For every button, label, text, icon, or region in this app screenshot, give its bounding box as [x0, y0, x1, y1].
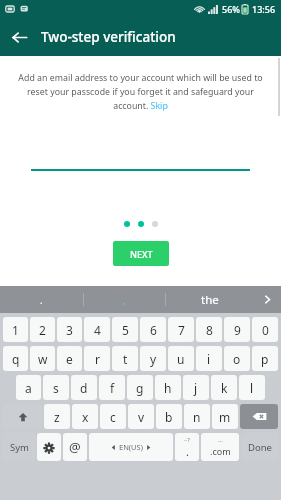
staticText: e	[66, 351, 73, 367]
staticText: 4	[94, 322, 101, 338]
button[interactable]: Navigate up	[0, 18, 38, 56]
button[interactable]: a	[16, 375, 41, 400]
button[interactable]: 5	[112, 317, 138, 342]
button[interactable]: r	[84, 346, 110, 371]
button[interactable]: z	[44, 404, 70, 429]
button[interactable]: u	[168, 346, 194, 371]
staticText: r	[95, 351, 100, 367]
staticText: p	[261, 351, 269, 367]
staticText: f	[110, 380, 115, 396]
button[interactable]: q	[3, 346, 28, 371]
button[interactable]: the	[166, 286, 254, 313]
staticText: 7	[178, 322, 185, 338]
button[interactable]: m	[212, 404, 238, 429]
staticText: .com	[210, 445, 231, 457]
staticText: Sym	[10, 441, 29, 454]
button[interactable]: Done	[241, 433, 278, 461]
button[interactable]: 3	[57, 317, 82, 342]
staticText: 8	[206, 322, 213, 338]
button[interactable]: f	[99, 375, 125, 400]
staticText: l	[250, 380, 254, 396]
staticText: 56%	[222, 3, 240, 15]
staticText: m	[219, 409, 231, 425]
button[interactable]: j	[183, 375, 209, 400]
button[interactable]: 1	[3, 317, 28, 342]
button[interactable]: Backspace	[240, 404, 278, 429]
button[interactable]: y	[140, 346, 166, 371]
staticText: 5	[122, 322, 129, 338]
staticText: k	[221, 380, 228, 396]
staticText: i	[207, 351, 211, 367]
button[interactable]: k	[211, 375, 237, 400]
button[interactable]: h	[155, 375, 181, 400]
button[interactable]: x	[72, 404, 98, 429]
staticText: 13:56	[252, 3, 276, 15]
staticText: .	[186, 444, 189, 459]
button[interactable]: 7	[168, 317, 194, 342]
staticText: j	[194, 380, 198, 396]
staticText: 9	[234, 322, 241, 338]
staticText: Done	[248, 441, 272, 454]
staticText: Two-step verification	[41, 28, 176, 46]
staticText: u	[177, 351, 185, 367]
button[interactable]: v	[128, 404, 154, 429]
staticText: x	[82, 409, 89, 425]
button[interactable]: 2	[30, 317, 55, 342]
staticText: v	[138, 409, 145, 425]
button[interactable]: 4	[84, 317, 110, 342]
button[interactable]: l	[239, 375, 265, 400]
button[interactable]: p	[252, 346, 278, 371]
staticText: ,	[123, 294, 126, 306]
button[interactable]: Space	[89, 433, 173, 461]
button[interactable]: 9	[224, 317, 250, 342]
staticText: t	[123, 351, 128, 367]
button[interactable]: b	[156, 404, 182, 429]
button[interactable]: t	[112, 346, 138, 371]
button[interactable]: Shift	[3, 404, 42, 429]
button[interactable]: Keyboard settings	[37, 433, 61, 461]
staticText: 2	[39, 322, 46, 338]
staticText: ···	[218, 437, 223, 445]
staticText: n	[193, 409, 201, 425]
button[interactable]: More suggestions	[254, 286, 281, 313]
button[interactable]: 6	[140, 317, 166, 342]
staticText: the	[201, 292, 219, 308]
button[interactable]: ··?	[175, 433, 199, 461]
staticText: a	[25, 380, 32, 396]
button[interactable]: 0	[252, 317, 278, 342]
button[interactable]: o	[224, 346, 250, 371]
staticText: 6	[150, 322, 157, 338]
button[interactable]: d	[71, 375, 97, 400]
staticText: q	[12, 351, 20, 367]
staticText: 3	[66, 322, 73, 338]
button[interactable]: Sym	[3, 433, 35, 461]
button[interactable]: ···	[201, 433, 239, 461]
staticText: g	[136, 380, 144, 396]
staticText: ··?	[184, 436, 190, 444]
button[interactable]: w	[30, 346, 55, 371]
button[interactable]: 8	[196, 317, 222, 342]
button[interactable]	[31, 153, 250, 171]
button[interactable]: c	[100, 404, 126, 429]
staticText: w	[38, 351, 48, 367]
button[interactable]: @	[63, 433, 87, 461]
staticText: 1	[12, 322, 19, 338]
button[interactable]: NEXT	[113, 241, 169, 266]
staticText: z	[54, 409, 60, 425]
staticText: 0	[262, 322, 269, 338]
button[interactable]: s	[43, 375, 69, 400]
staticText: d	[80, 380, 88, 396]
staticText: o	[233, 351, 241, 367]
staticText: s	[53, 380, 59, 396]
staticText: Add an email address to your account whi…	[15, 72, 266, 111]
button[interactable]: e	[57, 346, 82, 371]
staticText: y	[150, 351, 157, 367]
button[interactable]: i	[196, 346, 222, 371]
staticText: @	[69, 438, 81, 456]
button[interactable]: g	[127, 375, 153, 400]
staticText: h	[164, 380, 172, 396]
button[interactable]: n	[184, 404, 210, 429]
staticText: NEXT	[130, 248, 153, 260]
